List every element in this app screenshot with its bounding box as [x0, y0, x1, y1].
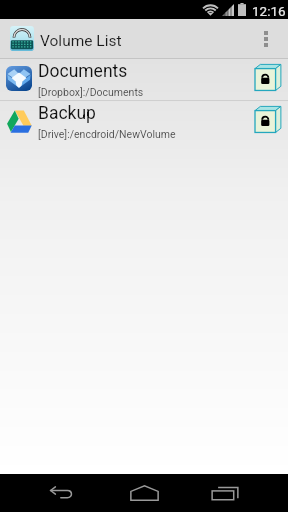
button[interactable]: Documents [0, 59, 288, 100]
button[interactable]: More options [252, 19, 280, 59]
staticText: Documents [38, 61, 128, 82]
button[interactable]: Recent apps [192, 474, 257, 512]
staticText: 12:16 [252, 3, 286, 19]
button[interactable]: Back [31, 474, 96, 512]
button[interactable]: Home [112, 474, 176, 512]
staticText: [Dropbox]:/Documents [38, 86, 144, 98]
staticText: Volume List [40, 32, 122, 50]
staticText: [Drive]:/encdroid/NewVolume [38, 128, 176, 140]
staticText: Backup [38, 103, 96, 124]
button[interactable]: Backup [0, 101, 288, 142]
